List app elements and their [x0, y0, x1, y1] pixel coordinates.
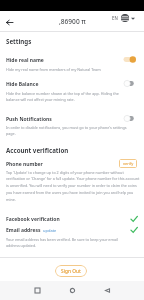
- staticText: Phone number: [6, 161, 43, 168]
- button[interactable]: Back: [0, 13, 18, 31]
- staticText: Email address: [6, 227, 41, 234]
- staticText: Facebook verification: [6, 216, 60, 223]
- button[interactable]: Sign Out: [55, 265, 87, 277]
- staticText: EN: [112, 15, 118, 21]
- staticText: Your email address has been verified. Be…: [6, 237, 132, 249]
- staticText: Hide my real name from members of my Nat…: [6, 67, 110, 72]
- other: Verified: [130, 215, 138, 223]
- button[interactable]: Switch off: [122, 79, 136, 88]
- button[interactable]: Recent apps: [28, 281, 46, 300]
- staticText: update: [43, 228, 57, 233]
- staticText: ,86900 π: [59, 17, 86, 26]
- button[interactable]: verify: [119, 159, 137, 168]
- button[interactable]: Switch off: [122, 114, 136, 123]
- staticText: Hide the balance number shown at the top…: [6, 91, 126, 103]
- staticText: Hide real name: [6, 57, 44, 64]
- button[interactable]: Switch on: [122, 55, 136, 64]
- button[interactable]: Home: [63, 281, 81, 300]
- staticText: Sign Out: [61, 268, 81, 275]
- staticText: In order to disable notifications, you m…: [6, 125, 136, 137]
- staticText: Tap 'Update' to change up to 2 digits of…: [6, 170, 140, 203]
- staticText: Account verification: [6, 146, 69, 154]
- staticText: verify: [123, 161, 134, 166]
- other: Verified: [130, 226, 138, 234]
- button[interactable]: Back: [98, 281, 116, 300]
- staticText: Settings: [6, 37, 32, 45]
- button[interactable]: EN: [112, 14, 135, 22]
- staticText: Hide Balance: [6, 81, 39, 88]
- staticText: Push Notifications: [6, 116, 52, 123]
